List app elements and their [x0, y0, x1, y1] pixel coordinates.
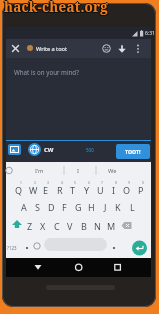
staticText: hack-cheat.org — [4, 0, 109, 16]
button[interactable]: O — [120, 184, 134, 196]
staticText: 3 — [47, 180, 49, 185]
staticText: N — [94, 220, 101, 232]
button[interactable]: We — [102, 165, 122, 176]
staticText: I — [112, 184, 116, 196]
button[interactable] — [117, 44, 127, 54]
staticText: S — [35, 201, 40, 213]
button[interactable]: W — [26, 184, 40, 196]
staticText: V — [67, 220, 73, 232]
staticText: 1 — [20, 180, 22, 185]
staticText: F — [62, 201, 67, 213]
button[interactable] — [28, 143, 41, 156]
button[interactable]: T — [66, 184, 80, 196]
button[interactable]: M — [104, 220, 118, 232]
staticText: H — [88, 201, 95, 213]
button[interactable] — [70, 260, 87, 275]
staticText: A — [21, 201, 27, 213]
button[interactable]: C — [50, 220, 64, 232]
button[interactable]: L — [125, 201, 139, 213]
button[interactable]: G — [71, 201, 85, 213]
button[interactable] — [30, 260, 47, 275]
button[interactable]: I — [107, 184, 121, 196]
staticText: E — [43, 184, 49, 196]
staticText: R — [57, 184, 63, 196]
staticText: Write a toot — [36, 45, 67, 53]
button[interactable]: V — [63, 220, 77, 232]
button[interactable]: D — [44, 201, 58, 213]
staticText: U — [97, 184, 104, 196]
button[interactable] — [109, 260, 126, 275]
button[interactable]: S — [30, 201, 44, 213]
button[interactable] — [102, 44, 111, 53]
staticText: W — [29, 184, 38, 196]
button[interactable]: U — [93, 184, 107, 196]
staticText: Y — [84, 184, 90, 196]
staticText: 0 — [142, 180, 144, 185]
staticText: TOOT! — [125, 148, 141, 155]
staticText: C — [54, 220, 60, 232]
button[interactable]: B — [77, 220, 91, 232]
staticText: X — [40, 220, 46, 232]
staticText: D — [48, 201, 55, 213]
staticText: B — [81, 220, 87, 232]
staticText: Q — [15, 184, 23, 196]
button[interactable] — [134, 43, 142, 55]
staticText: K — [115, 201, 121, 213]
staticText: hack-cheat.org — [5, 0, 110, 16]
staticText: O — [123, 184, 131, 196]
button[interactable]: P — [134, 184, 148, 196]
staticText: hack-cheat.org — [4, 0, 109, 15]
button[interactable]: Z — [23, 220, 37, 232]
staticText: 2 — [34, 180, 36, 185]
staticText: I'm — [35, 167, 44, 175]
staticText: 6:31 — [145, 30, 155, 37]
staticText: hack-cheat.org — [3, 0, 108, 16]
staticText: 9 — [128, 180, 130, 185]
staticText: hack-cheat.org — [4, 0, 109, 17]
button[interactable]: R — [53, 184, 67, 196]
button[interactable]: TOOT! — [116, 144, 150, 159]
staticText: 7 — [101, 180, 103, 185]
staticText: L — [130, 201, 135, 213]
button[interactable]: X — [36, 220, 50, 232]
button[interactable]: Q — [12, 184, 26, 196]
button[interactable]: K — [111, 201, 125, 213]
staticText: hack-cheat.org — [5, 0, 110, 17]
staticText: What is on your mind? — [14, 68, 79, 76]
button[interactable] — [132, 240, 148, 256]
staticText: We — [108, 167, 117, 175]
button[interactable]: E — [39, 184, 53, 196]
staticText: M — [107, 220, 116, 232]
staticText: T — [70, 184, 76, 196]
staticText: P — [138, 184, 144, 196]
button[interactable] — [8, 144, 21, 155]
button[interactable]: A — [17, 201, 31, 213]
staticText: 8 — [115, 180, 117, 185]
button[interactable]: Y — [80, 184, 94, 196]
staticText: I — [77, 167, 79, 175]
button[interactable]: H — [84, 201, 98, 213]
staticText: 6 — [88, 180, 90, 185]
button[interactable]: I — [68, 165, 88, 176]
button[interactable]: J — [98, 201, 112, 213]
staticText: hack-cheat.org — [3, 0, 108, 17]
button[interactable]: CW — [44, 146, 54, 154]
staticText: 500 — [86, 147, 94, 153]
button[interactable]: F — [57, 201, 71, 213]
button[interactable]: N — [90, 220, 104, 232]
button[interactable] — [11, 44, 20, 53]
button[interactable] — [44, 238, 107, 251]
button[interactable]: I'm — [29, 165, 49, 176]
staticText: J — [104, 201, 107, 213]
staticText: Z — [27, 220, 33, 232]
button[interactable]: ?123 — [7, 245, 17, 251]
staticText: 4 — [61, 180, 63, 185]
staticText: 5 — [74, 180, 76, 185]
staticText: G — [75, 201, 82, 213]
